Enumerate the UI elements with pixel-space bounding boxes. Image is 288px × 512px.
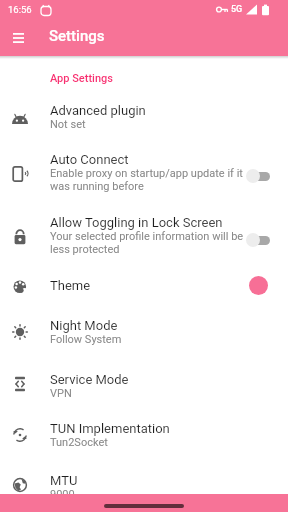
staticText: Settings	[49, 27, 105, 45]
staticText: Your selected profile information will b…	[50, 230, 244, 256]
staticText: MTU	[50, 473, 78, 488]
button[interactable]: Allow Toggling in Lock Screen	[0, 209, 288, 261]
staticText: Allow Toggling in Lock Screen	[50, 215, 223, 230]
staticText: Night Mode	[50, 318, 118, 333]
button[interactable]: MTU	[0, 462, 288, 512]
staticText: Advanced plugin	[50, 103, 146, 118]
staticText: App Settings	[50, 72, 113, 85]
staticText: 5G	[231, 4, 243, 15]
staticText: Theme	[50, 278, 91, 293]
staticText: Enable proxy on startup/app update if it…	[50, 167, 243, 193]
button[interactable]: TUN Implementation	[0, 410, 288, 460]
staticText: TUN Implementation	[50, 421, 170, 436]
staticText: Tun2Socket	[50, 436, 108, 449]
button[interactable]: Advanced plugin	[0, 93, 288, 141]
staticText: Not set	[50, 118, 86, 131]
button[interactable]: Service Mode	[0, 361, 288, 411]
button[interactable]: Auto Connect	[0, 146, 288, 198]
staticText: 9000	[50, 488, 75, 501]
staticText: Service Mode	[50, 372, 129, 387]
staticText: 16:56	[8, 4, 32, 15]
button[interactable]: Night Mode	[0, 307, 288, 357]
staticText: Auto Connect	[50, 152, 129, 167]
button[interactable]: Theme	[0, 263, 288, 307]
staticText: VPN	[50, 387, 72, 400]
button[interactable]	[5, 29, 32, 47]
staticText: Follow System	[50, 333, 122, 346]
